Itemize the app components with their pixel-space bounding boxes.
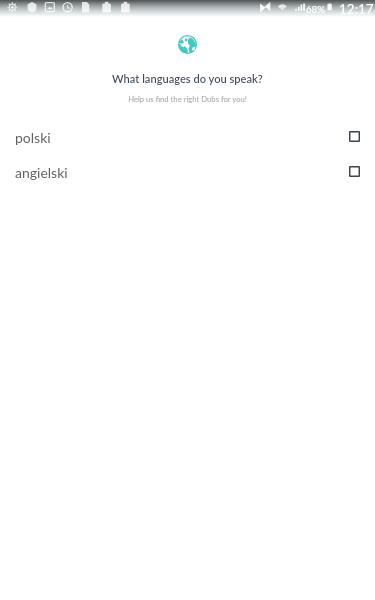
staticText: 12:17 (339, 1, 374, 17)
staticText: Help us find the right Dubs for you! (0, 94, 375, 103)
button[interactable]: angielski (0, 155, 375, 190)
button[interactable]: polski (0, 120, 375, 155)
button[interactable]: Select angielski (349, 166, 360, 177)
staticText: angielski (15, 164, 68, 181)
staticText: 68% (306, 3, 326, 15)
staticText: polski (15, 129, 51, 146)
button[interactable]: Select polski (349, 131, 360, 142)
staticText: What languages do you speak? (0, 72, 375, 85)
